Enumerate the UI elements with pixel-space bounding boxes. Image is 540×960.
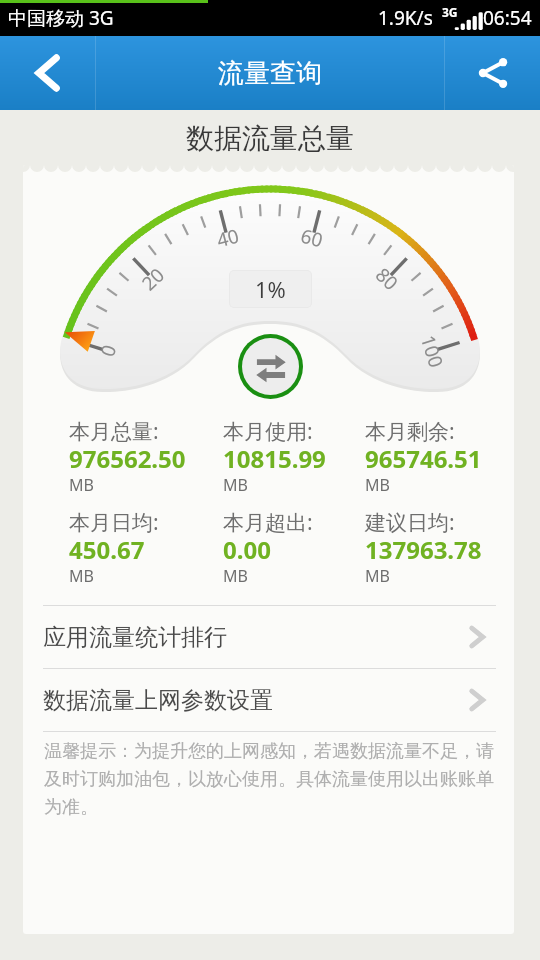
- staticText: 137963.78: [365, 533, 482, 566]
- staticText: 60: [298, 223, 326, 253]
- staticText: 80: [370, 262, 404, 296]
- staticText: 中国移动 3G: [8, 5, 114, 31]
- staticText: MB: [365, 474, 390, 496]
- staticText: 流量查询: [218, 57, 322, 90]
- staticText: 本月使用:: [223, 417, 313, 446]
- staticText: MB: [223, 565, 248, 587]
- staticText: 应用流量统计排行: [43, 623, 227, 652]
- staticText: 10815.99: [223, 442, 326, 475]
- staticText: 0: [94, 341, 122, 360]
- staticText: 976562.50: [69, 442, 186, 475]
- button[interactable]: Share: [445, 36, 540, 110]
- staticText: 450.67: [69, 533, 145, 566]
- staticText: MB: [69, 474, 94, 496]
- button[interactable]: 应用流量统计排行: [23, 606, 514, 668]
- staticText: 1%: [255, 274, 286, 304]
- staticText: 本月日均:: [69, 508, 159, 537]
- staticText: 40: [214, 223, 242, 253]
- staticText: 本月超出:: [223, 508, 313, 537]
- staticText: 数据流量上网参数设置: [43, 686, 273, 715]
- staticText: 建议日均:: [365, 508, 455, 537]
- staticText: 3G: [442, 4, 458, 20]
- staticText: 100: [415, 332, 450, 371]
- button[interactable]: 数据流量上网参数设置: [23, 669, 514, 731]
- staticText: 本月剩余:: [365, 417, 455, 446]
- staticText: 965746.51: [365, 442, 482, 475]
- button[interactable]: Switch data: [242, 338, 299, 395]
- button[interactable]: Back: [0, 36, 95, 110]
- staticText: MB: [365, 565, 390, 587]
- staticText: 0.00: [223, 533, 271, 566]
- staticText: MB: [223, 474, 248, 496]
- staticText: 温馨提示：为提升您的上网感知，若遇数据流量不足，请及时订购加油包，以放心使用。具…: [44, 740, 502, 818]
- staticText: 1.9K/s: [378, 5, 433, 31]
- staticText: MB: [69, 565, 94, 587]
- staticText: 数据流量总量: [186, 121, 354, 156]
- staticText: 本月总量:: [69, 417, 159, 446]
- staticText: 20: [136, 262, 170, 296]
- staticText: 06:54: [483, 5, 532, 31]
